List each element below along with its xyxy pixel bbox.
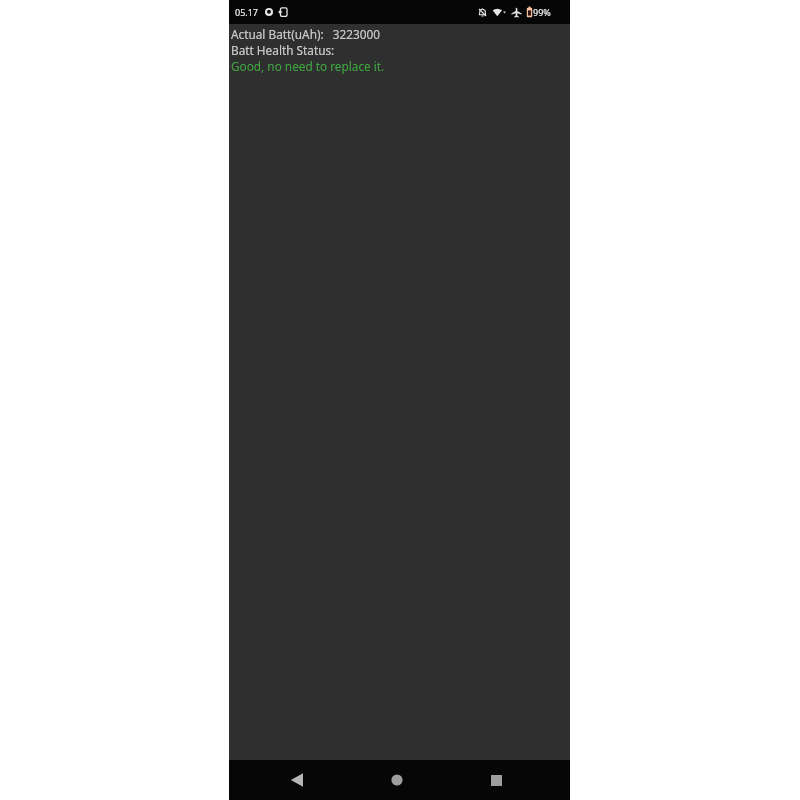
staticText: Batt Health Status:: [231, 42, 335, 58]
button[interactable]: [385, 768, 409, 792]
staticText: Actual Batt(uAh): 3223000: [231, 26, 381, 42]
staticText: Good, no need to replace it.: [231, 58, 385, 74]
staticText: 99%: [533, 6, 551, 18]
button[interactable]: [285, 768, 309, 792]
button[interactable]: [484, 768, 508, 792]
staticText: 05.17: [235, 6, 259, 18]
